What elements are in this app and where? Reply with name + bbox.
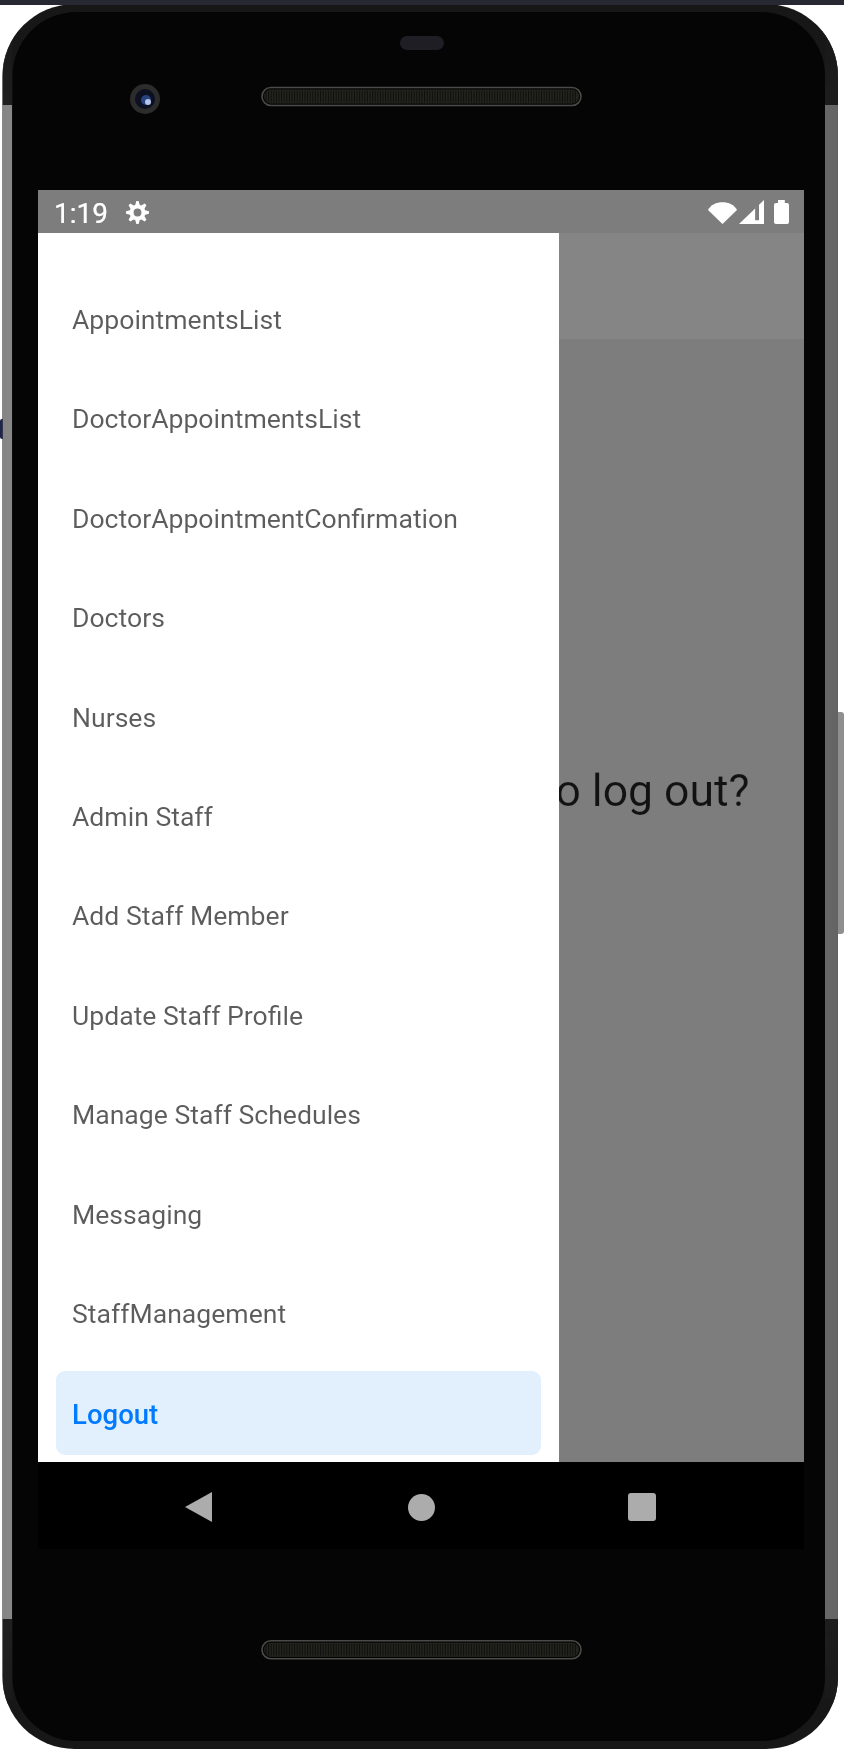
button[interactable]: Messaging [38,1165,559,1264]
staticText: Are you sure you want to log out? [95,765,750,817]
button[interactable]: Nurses [38,668,559,767]
staticText: Nurses [72,702,157,733]
button[interactable]: DoctorAppointmentConfirmation [38,469,559,568]
staticText: Doctors [72,602,165,633]
button[interactable]: Logout [56,1371,541,1455]
staticText: DoctorAppointmentConfirmation [72,503,458,534]
staticText: Messaging [72,1199,203,1230]
button[interactable]: Doctors [38,568,559,667]
staticText: DoctorAppointmentsList [72,403,362,434]
staticText: Update Staff Profile [72,1000,304,1031]
button[interactable]: Recent apps [620,1485,664,1529]
staticText: Add Staff Member [72,900,289,931]
button[interactable]: Manage Staff Schedules [38,1065,559,1164]
staticText: Manage Staff Schedules [72,1099,361,1130]
staticText: StaffManagement [72,1298,287,1329]
button[interactable]: Update Staff Profile [38,966,559,1065]
button[interactable]: AppointmentsList [38,270,559,369]
staticText: Admin Staff [72,801,213,832]
staticText: AppointmentsList [72,304,282,335]
staticText: 1:19 [54,197,108,230]
button[interactable]: StaffManagement [38,1264,559,1363]
button[interactable]: Back [176,1485,220,1529]
button[interactable]: DoctorAppointmentsList [38,369,559,468]
button[interactable]: Add Staff Member [38,866,559,965]
staticText: Logout [72,1398,159,1430]
button[interactable]: Admin Staff [38,767,559,866]
button[interactable]: Home [399,1485,443,1529]
